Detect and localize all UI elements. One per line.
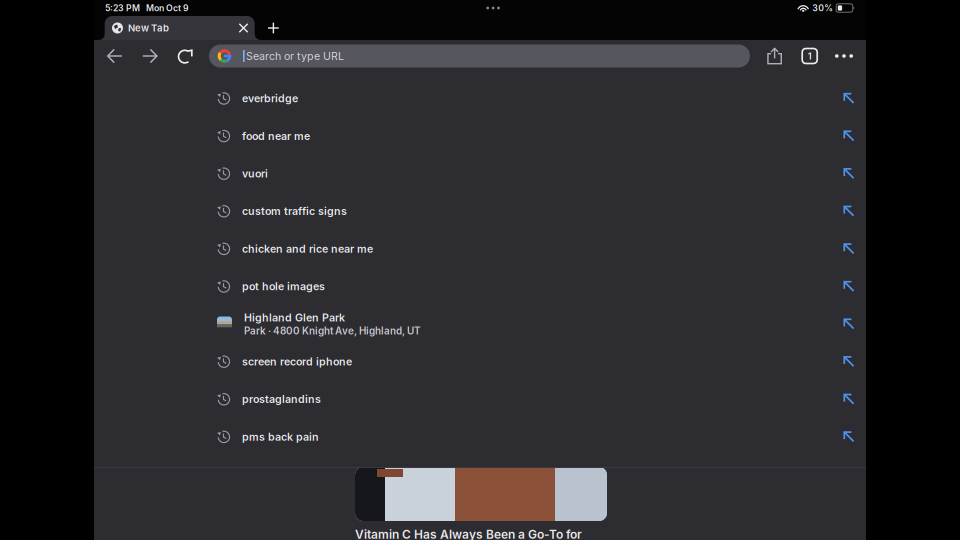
button[interactable]: Back	[105, 41, 125, 71]
button[interactable]: Tabs	[801, 41, 819, 71]
staticText: 30%	[812, 3, 833, 13]
staticText: Search or type URL	[246, 49, 344, 62]
staticText: food near me	[242, 129, 310, 142]
staticText: 1	[808, 50, 812, 62]
button[interactable]: More options	[835, 41, 853, 71]
button[interactable]: New Tab	[262, 16, 285, 39]
button[interactable]: vuori	[94, 155, 866, 192]
staticText: Vitamin C Has Always Been a Go-To for	[355, 527, 582, 540]
staticText: vuori	[242, 167, 268, 180]
button[interactable]: screen record iphone	[94, 343, 866, 380]
staticText: Highland Glen Park	[244, 311, 345, 324]
button[interactable]: everbridge	[94, 80, 866, 117]
button[interactable]: Share	[765, 41, 784, 71]
staticText: everbridge	[242, 92, 298, 105]
staticText: pot hole images	[242, 280, 325, 293]
staticText: pms back pain	[242, 430, 319, 443]
staticText: New Tab	[128, 22, 169, 34]
button[interactable]: Search or type URL	[209, 44, 750, 67]
button[interactable]: food near me	[94, 117, 866, 155]
button[interactable]: pot hole images	[94, 268, 866, 305]
button[interactable]: New Tab	[99, 16, 261, 40]
staticText: prostaglandins	[242, 393, 321, 406]
staticText: Park · 4800 Knight Ave, Highland, UT	[244, 325, 421, 337]
button[interactable]: Forward	[140, 41, 160, 71]
button[interactable]: chicken and rice near me	[94, 230, 866, 268]
button[interactable]: pms back pain	[94, 418, 866, 456]
staticText: custom traffic signs	[242, 205, 347, 218]
button[interactable]: Highland Glen Park	[94, 305, 866, 343]
button[interactable]: custom traffic signs	[94, 192, 866, 230]
staticText: Mon Oct 9	[146, 3, 189, 13]
button[interactable]: prostaglandins	[94, 380, 866, 418]
staticText: 5:23 PM	[105, 3, 140, 13]
staticText: screen record iphone	[242, 355, 352, 368]
staticText: chicken and rice near me	[242, 242, 373, 255]
button[interactable]: Reload	[175, 41, 195, 71]
